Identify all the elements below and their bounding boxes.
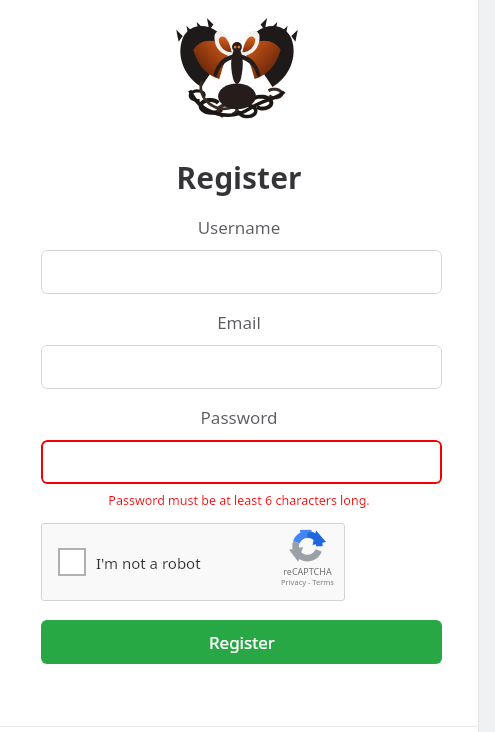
staticText: Register: [0, 157, 478, 198]
staticText: Password: [0, 406, 478, 429]
button[interactable]: [41, 440, 442, 484]
staticText: Password must be at least 6 characters l…: [0, 492, 478, 509]
button[interactable]: Register: [41, 620, 442, 664]
button[interactable]: [41, 345, 442, 389]
staticText: reCAPTCHA: [283, 565, 332, 577]
staticText: Username: [0, 216, 478, 239]
staticText: I'm not a robot: [96, 553, 201, 573]
staticText: Email: [0, 311, 478, 334]
button[interactable]: I'm not a robot: [41, 523, 345, 601]
button[interactable]: [41, 250, 442, 294]
staticText: Privacy - Terms: [281, 577, 334, 587]
staticText: Register: [209, 631, 275, 654]
